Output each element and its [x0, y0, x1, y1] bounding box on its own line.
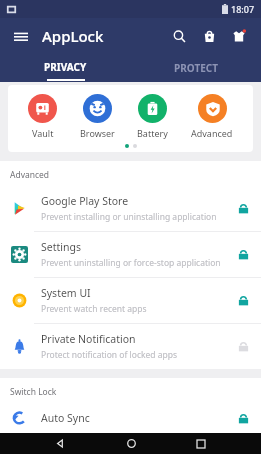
staticText: Google Play Store [41, 194, 129, 208]
button[interactable]: Auto Sync [0, 403, 261, 433]
button[interactable]: PRIVACY [0, 54, 130, 82]
staticText: PROTECT [174, 61, 218, 75]
staticText: Prevent uninstalling or force-stop appli… [41, 257, 221, 269]
staticText: System UI [41, 286, 91, 300]
staticText: Settings [41, 240, 81, 254]
button[interactable]: Themes [227, 24, 251, 48]
button[interactable]: Vault [25, 94, 60, 139]
button[interactable]: Private Notification [0, 324, 261, 369]
button[interactable]: Search [167, 24, 191, 48]
staticText: 18:07 [231, 3, 255, 15]
button[interactable]: Settings [0, 232, 261, 277]
button[interactable]: Browser [77, 94, 118, 139]
staticText: Prevent watch recent apps [41, 303, 147, 315]
button[interactable]: Advanced [188, 94, 236, 139]
staticText: Battery [137, 127, 168, 139]
button[interactable]: Menu [10, 25, 32, 47]
staticText: Switch Lock [10, 386, 57, 398]
button[interactable]: Google Play Store [0, 186, 261, 231]
staticText: Private Notification [41, 332, 136, 346]
staticText: Protect notification of locked apps [41, 349, 178, 361]
staticText: AppLock [42, 26, 104, 46]
staticText: Browser [80, 127, 115, 139]
staticText: Advanced [191, 127, 233, 139]
button[interactable]: Recents [190, 433, 212, 454]
staticText: Prevent installing or uninstalling appli… [41, 211, 217, 223]
button[interactable]: Back [49, 433, 71, 454]
button[interactable]: Lock themes [197, 24, 221, 48]
button[interactable]: Battery [134, 94, 171, 139]
staticText: PRIVACY [44, 60, 87, 74]
button[interactable]: System UI [0, 278, 261, 323]
staticText: Advanced [10, 169, 50, 181]
staticText: Auto Sync [41, 411, 90, 425]
button[interactable]: Home [120, 433, 142, 454]
staticText: Vault [32, 127, 54, 139]
button[interactable]: PROTECT [130, 54, 261, 82]
